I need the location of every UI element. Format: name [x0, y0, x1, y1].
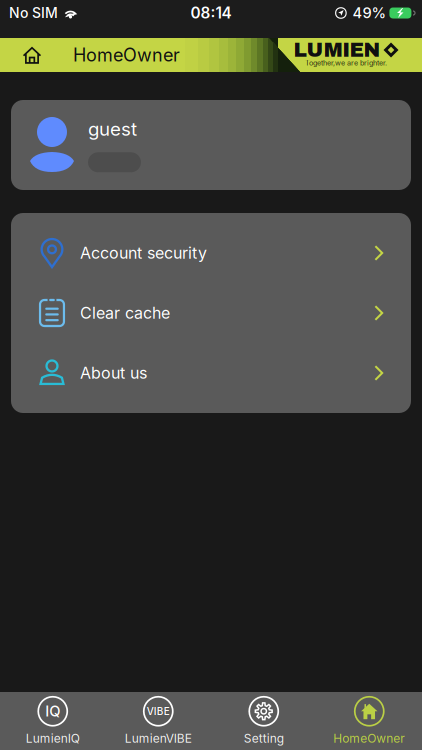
staticText: guest: [88, 118, 137, 140]
staticText: 49%: [352, 4, 386, 22]
staticText: 08:14: [190, 4, 231, 22]
button[interactable]: Account security: [11, 223, 411, 283]
button[interactable]: Setting: [211, 692, 316, 750]
staticText: LumienIQ: [26, 731, 80, 746]
staticText: About us: [80, 363, 147, 383]
button[interactable]: guest: [11, 100, 411, 190]
staticText: LUMIEN: [293, 39, 380, 61]
staticText: IQ: [45, 702, 60, 720]
staticText: Together,we are brighter.: [305, 59, 387, 67]
button[interactable]: About us: [11, 343, 411, 403]
button[interactable]: Home: [14, 38, 50, 72]
staticText: VIBE: [147, 705, 170, 717]
staticText: Clear cache: [80, 303, 170, 323]
button[interactable]: VIBE: [105, 692, 211, 750]
staticText: HomeOwner: [333, 731, 405, 746]
button[interactable]: HomeOwner: [316, 692, 422, 750]
staticText: No SIM: [9, 4, 58, 21]
staticText: Account security: [80, 243, 207, 263]
staticText: HomeOwner: [73, 44, 180, 66]
staticText: Setting: [244, 731, 284, 746]
button[interactable]: IQ: [0, 692, 105, 750]
staticText: LumienVIBE: [125, 731, 192, 746]
button[interactable]: Clear cache: [11, 283, 411, 343]
